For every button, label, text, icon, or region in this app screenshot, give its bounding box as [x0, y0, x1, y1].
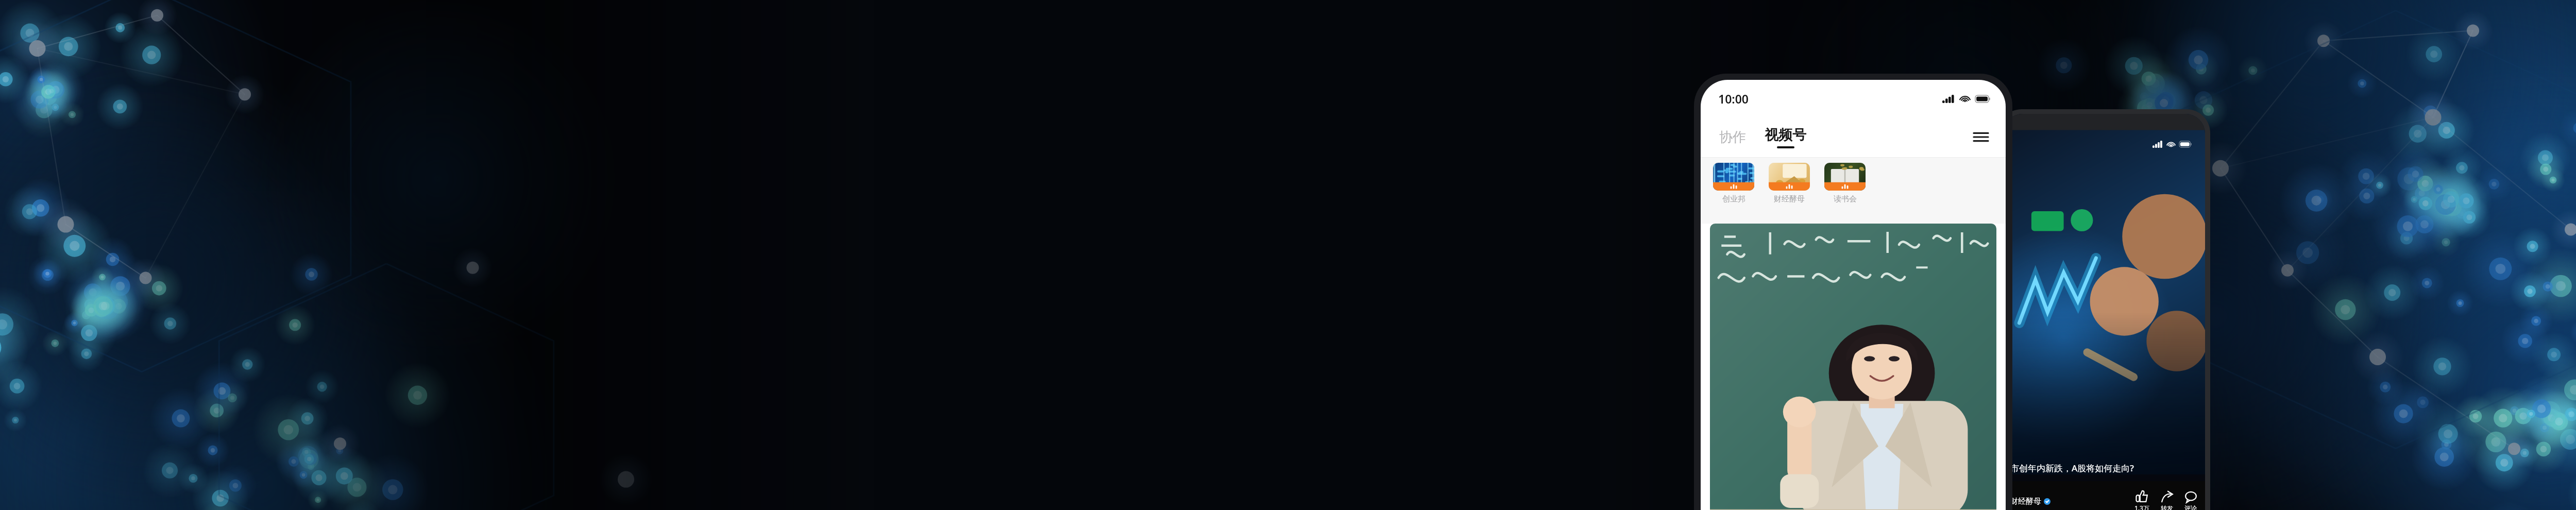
- staticText: 读书会: [1834, 194, 1857, 204]
- button[interactable]: 财经酵母: [1768, 163, 1811, 204]
- button[interactable]: Menu: [1970, 128, 1992, 146]
- button[interactable]: 财经酵母: [2010, 494, 2050, 509]
- button[interactable]: 视频号: [1761, 124, 1809, 150]
- staticText: 财经酵母: [1774, 194, 1805, 204]
- staticText: 评论: [2184, 504, 2197, 510]
- staticText: 视频号: [1765, 126, 1806, 144]
- staticText: 1.3万: [2134, 504, 2149, 510]
- button[interactable]: 读书会: [1823, 163, 1867, 204]
- staticText: 市创年内新跌，A股将如何走向?: [2010, 462, 2134, 474]
- staticText: 协作: [1719, 129, 1746, 146]
- staticText: 创业邦: [1722, 194, 1745, 204]
- staticText: 财经酵母: [2010, 497, 2041, 506]
- button[interactable]: 协作: [1716, 125, 1749, 150]
- staticText: 转发: [2161, 504, 2173, 510]
- staticText: 10:00: [1718, 91, 1749, 107]
- button[interactable]: 评论: [2183, 489, 2198, 510]
- button[interactable]: 转发: [2160, 489, 2174, 510]
- button[interactable]: 创业邦: [1712, 163, 1755, 204]
- button[interactable]: 1.3万: [2133, 488, 2150, 510]
